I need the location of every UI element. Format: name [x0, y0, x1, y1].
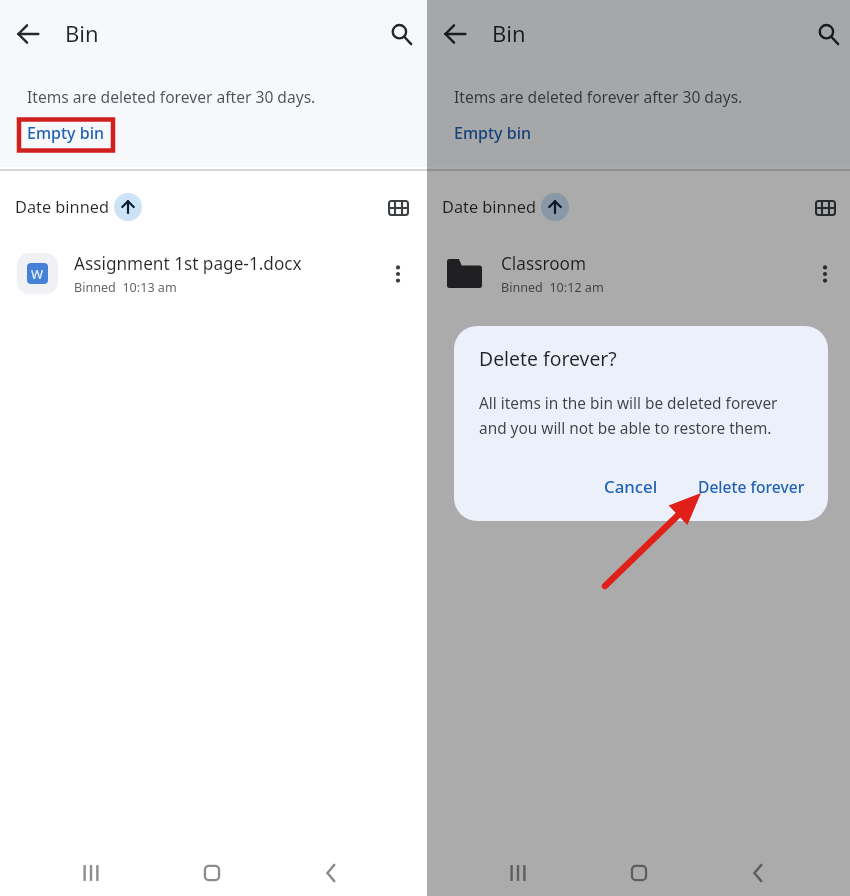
- button[interactable]: Back: [309, 851, 353, 895]
- button[interactable]: Grid view: [805, 188, 845, 228]
- button[interactable]: Date binned: [15, 193, 142, 221]
- button[interactable]: W: [0, 243, 427, 303]
- button[interactable]: Delete forever: [686, 468, 817, 505]
- staticText: Items are deleted forever after 30 days.: [27, 86, 316, 107]
- button[interactable]: Back: [438, 17, 472, 51]
- button[interactable]: Grid view: [378, 188, 418, 228]
- button[interactable]: Cancel: [592, 467, 670, 506]
- button[interactable]: Home: [190, 851, 234, 895]
- staticText: Classroom: [501, 252, 587, 275]
- button[interactable]: Classroom: [427, 243, 850, 303]
- staticText: Binned 10:13 am: [74, 279, 177, 296]
- button[interactable]: Recents: [496, 851, 540, 895]
- button[interactable]: Empty bin: [454, 122, 531, 144]
- button[interactable]: More options: [378, 254, 418, 294]
- staticText: W: [31, 265, 44, 283]
- staticText: All items in the bin will be deleted for…: [479, 393, 778, 438]
- button[interactable]: Home: [617, 851, 661, 895]
- staticText: Bin: [492, 18, 526, 48]
- button[interactable]: More options: [805, 254, 845, 294]
- staticText: Date binned: [15, 196, 109, 218]
- staticText: Bin: [65, 18, 99, 48]
- staticText: Delete forever?: [479, 345, 617, 371]
- staticText: Empty bin: [454, 122, 531, 144]
- button[interactable]: Search: [384, 17, 418, 51]
- staticText: Binned 10:12 am: [501, 279, 604, 296]
- staticText: Empty bin: [27, 122, 104, 144]
- button[interactable]: Search: [811, 17, 845, 51]
- staticText: Delete forever: [698, 476, 805, 497]
- button[interactable]: Date binned: [442, 193, 569, 221]
- button[interactable]: Back: [736, 851, 780, 895]
- staticText: Date binned: [442, 196, 536, 218]
- staticText: Cancel: [604, 475, 658, 498]
- button[interactable]: Empty bin: [27, 122, 104, 144]
- staticText: Assignment 1st page-1.docx: [74, 252, 302, 275]
- staticText: Items are deleted forever after 30 days.: [454, 86, 743, 107]
- button[interactable]: Back: [11, 17, 45, 51]
- button[interactable]: Recents: [69, 851, 113, 895]
